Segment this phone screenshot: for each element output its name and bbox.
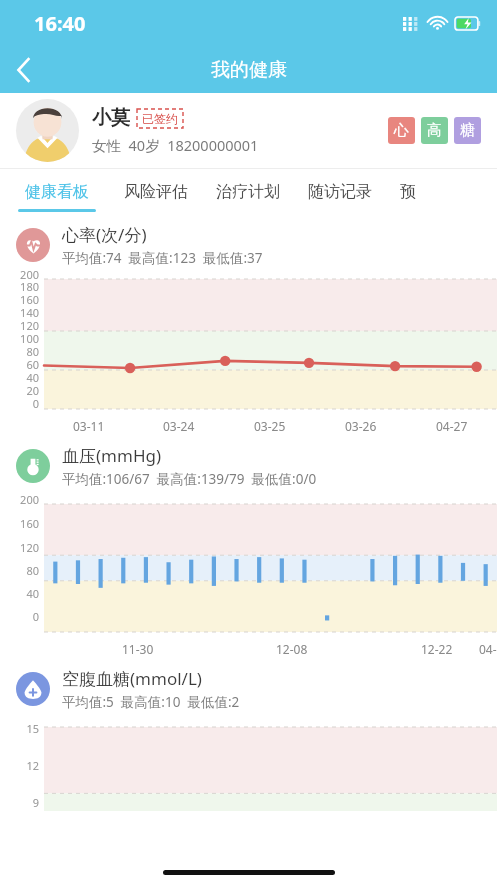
staticText: 血压(mmHg) (62, 444, 162, 467)
staticText: 空腹血糖(mmol/L) (62, 667, 202, 690)
staticText: 心 (394, 121, 409, 140)
staticText: 平均值:5 最高值:10 最低值:2 (62, 693, 240, 711)
staticText: 04-27 (436, 418, 468, 434)
staticText: 120 (20, 540, 39, 555)
staticText: 100 (20, 331, 39, 344)
staticText: 12 (26, 758, 39, 773)
staticText: 03-24 (163, 418, 195, 434)
button[interactable]: 已签约 (137, 109, 183, 128)
staticText: 03-26 (345, 418, 377, 434)
staticText: 120 (20, 318, 39, 331)
staticText: 60 (26, 357, 39, 370)
staticText: 9 (32, 795, 39, 810)
staticText: 03-11 (73, 418, 105, 434)
staticText: 糖 (460, 121, 475, 140)
staticText: 已签约 (142, 111, 178, 126)
button[interactable]: 治疗计划 (216, 169, 280, 217)
staticText: 140 (20, 305, 39, 318)
staticText: 平均值:106/67 最高值:139/79 最低值:0/0 (62, 470, 317, 488)
staticText: 女性 40岁 18200000001 (92, 135, 259, 155)
button[interactable]: 高 (421, 117, 448, 144)
staticText: 40 (26, 370, 39, 383)
staticText: 平均值:74 最高值:123 最低值:37 (62, 249, 263, 267)
staticText: 200 (20, 267, 39, 279)
staticText: 12-08 (276, 641, 308, 657)
staticText: 15 (26, 721, 39, 736)
staticText: 04- (479, 641, 497, 657)
staticText: 180 (20, 279, 39, 292)
staticText: 200 (20, 492, 39, 507)
staticText: 风险评估 (124, 182, 188, 202)
staticText: 11-30 (122, 641, 154, 657)
staticText: 心率(次/分) (62, 223, 147, 246)
button[interactable]: 空腹血糖(mmol/L) (0, 667, 497, 711)
button[interactable]: 血压(mmHg) (0, 444, 497, 488)
button[interactable]: 心率(次/分) (0, 223, 497, 267)
staticText: 20 (26, 383, 39, 396)
staticText: 我的健康 (211, 58, 287, 82)
staticText: 小莫 (92, 106, 130, 130)
button[interactable]: 健康看板 (18, 169, 96, 217)
button[interactable]: 小莫 (0, 93, 497, 168)
staticText: 03-25 (254, 418, 286, 434)
staticText: 80 (26, 563, 39, 578)
button[interactable]: 风险评估 (124, 169, 188, 217)
staticText: 0 (32, 396, 39, 409)
staticText: 40 (26, 586, 39, 601)
button[interactable]: 随访记录 (308, 169, 372, 217)
staticText: 160 (20, 516, 39, 531)
staticText: 0 (32, 609, 39, 624)
button[interactable]: 预 (400, 169, 416, 217)
staticText: 12-22 (421, 641, 453, 657)
staticText: 80 (26, 344, 39, 357)
staticText: 治疗计划 (216, 182, 280, 202)
staticText: 预 (400, 182, 416, 202)
staticText: 160 (20, 292, 39, 305)
button[interactable]: Back (0, 46, 48, 93)
staticText: 高 (427, 121, 442, 140)
staticText: 健康看板 (25, 182, 89, 202)
staticText: 随访记录 (308, 182, 372, 202)
button[interactable]: 糖 (454, 117, 481, 144)
button[interactable]: 心 (388, 117, 415, 144)
staticText: 16:40 (34, 10, 86, 37)
